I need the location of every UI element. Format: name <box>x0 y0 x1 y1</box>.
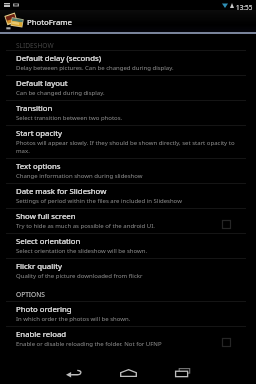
staticText: Enable reload <box>16 329 67 340</box>
staticText: Select orientation <box>16 236 81 247</box>
staticText: Default layout <box>16 78 68 89</box>
button[interactable]: Show full screen <box>0 208 256 233</box>
staticText: Select orientation the slideshow will be… <box>16 247 148 255</box>
staticText: Show full screen <box>16 211 76 222</box>
button[interactable]: Back <box>50 355 98 384</box>
button[interactable]: Transition <box>0 100 256 125</box>
staticText: In which order the photos will be shown. <box>16 315 131 323</box>
staticText: PhotoFrame <box>27 17 72 28</box>
button[interactable]: Default delay (seconds) <box>0 50 256 75</box>
button[interactable]: Text options <box>0 158 256 183</box>
button[interactable]: PhotoFrame <box>0 10 256 32</box>
staticText: Transition <box>16 103 53 114</box>
staticText: Text options <box>16 161 61 172</box>
button[interactable]: Recent apps <box>158 355 206 384</box>
button[interactable]: Start opacity <box>0 125 256 158</box>
staticText: OPTIONS <box>16 290 45 299</box>
button[interactable]: Enable reload <box>0 326 256 351</box>
staticText: Delay between pictures. Can be changed d… <box>16 64 174 72</box>
button[interactable]: Photo ordering <box>0 301 256 326</box>
staticText: Settings of period within the files are … <box>16 197 182 205</box>
staticText: Photos will appear slowly. If they shoul… <box>16 139 244 155</box>
staticText: Select transition between two photos. <box>16 114 123 122</box>
staticText: Enable or disable reloading the folder. … <box>16 340 162 348</box>
staticText: Start opacity <box>16 128 62 139</box>
staticText: SLIDESHOW <box>16 41 54 50</box>
staticText: Photo ordering <box>16 304 72 315</box>
button[interactable]: Home <box>104 355 152 384</box>
button[interactable]: Default layout <box>0 75 256 100</box>
staticText: Can be changed during display. <box>16 89 105 97</box>
button[interactable]: Select orientation <box>0 233 256 258</box>
button[interactable]: Flickr quality <box>0 258 256 283</box>
staticText: 13:55 <box>236 3 253 10</box>
staticText: Default delay (seconds) <box>16 53 102 64</box>
staticText: Flickr quality <box>16 261 63 272</box>
staticText: Change information shown during slidesho… <box>16 172 143 180</box>
staticText: Quality of the picture downloaded from f… <box>16 272 143 280</box>
button[interactable]: Date mask for Slideshow <box>0 183 256 208</box>
staticText: Try to hide as much as possible of the a… <box>16 222 155 230</box>
staticText: Date mask for Slideshow <box>16 186 107 197</box>
